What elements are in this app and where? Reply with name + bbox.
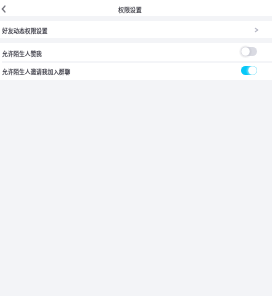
staticText: 允许陌生人赞我 [2,49,42,57]
staticText: 好友动态权限设置 [2,26,48,34]
button[interactable]: 允许陌生人赞我 [240,46,258,57]
button[interactable]: 允许陌生人赞我 [0,43,272,61]
button[interactable]: 允许陌生人邀请我加入群聊 [240,65,258,76]
button[interactable]: 好友动态权限设置 [0,21,272,38]
staticText: 允许陌生人邀请我加入群聊 [2,67,71,75]
button[interactable]: Back [0,3,9,15]
button[interactable]: 允许陌生人邀请我加入群聊 [0,61,272,80]
staticText: 权限设置 [118,5,142,14]
